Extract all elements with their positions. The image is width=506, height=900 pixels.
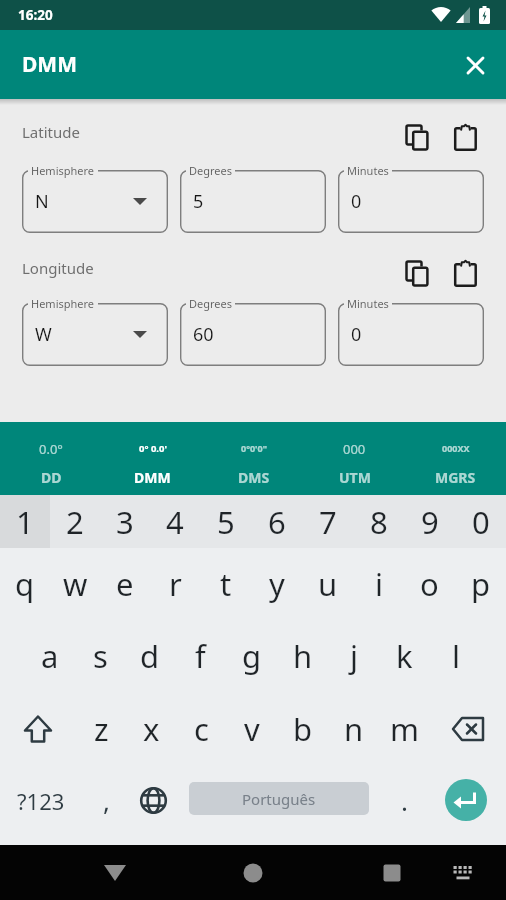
staticText: 60 xyxy=(193,322,214,347)
staticText: Minutes xyxy=(347,163,389,178)
staticText: a xyxy=(41,635,59,677)
button[interactable]: o xyxy=(404,548,455,620)
button[interactable]: Degrees xyxy=(180,163,326,233)
button[interactable]: 000XX xyxy=(405,422,506,495)
staticText: g xyxy=(242,635,262,677)
button[interactable] xyxy=(130,761,176,840)
button[interactable] xyxy=(448,256,482,290)
staticText: DMM xyxy=(134,468,171,487)
button[interactable]: p xyxy=(455,548,506,620)
button[interactable] xyxy=(362,845,422,900)
button[interactable]: Minutes xyxy=(338,163,484,233)
staticText: 16:20 xyxy=(18,6,53,24)
staticText: e xyxy=(116,563,134,605)
button[interactable]: t xyxy=(200,548,251,620)
staticText: Hemisphere xyxy=(31,163,95,178)
button[interactable]: s xyxy=(75,620,125,692)
staticText: Português xyxy=(242,789,316,809)
button[interactable]: b xyxy=(277,692,328,766)
button[interactable]: Minutes xyxy=(338,296,484,366)
staticText: b xyxy=(293,708,313,750)
button[interactable]: ?123 xyxy=(0,761,82,840)
staticText: 000XX xyxy=(442,442,470,454)
button[interactable]: Hemisphere xyxy=(22,296,168,366)
button[interactable]: 0.0° xyxy=(0,422,102,495)
staticText: 8 xyxy=(370,501,388,543)
staticText: Degrees xyxy=(189,296,232,311)
staticText: UTM xyxy=(339,468,371,487)
staticText: DMM xyxy=(22,50,77,79)
button[interactable]: 2 xyxy=(50,495,100,548)
button[interactable]: g xyxy=(226,620,277,692)
button[interactable]: 8 xyxy=(353,495,404,548)
button[interactable]: u xyxy=(302,548,353,620)
button[interactable]: l xyxy=(430,620,481,692)
button[interactable]: 6 xyxy=(251,495,302,548)
staticText: 0°0'0" xyxy=(241,442,267,454)
button[interactable]: 3 xyxy=(100,495,150,548)
button[interactable]: e xyxy=(100,548,150,620)
staticText: w xyxy=(63,563,88,605)
staticText: , xyxy=(103,783,110,818)
button[interactable]: a xyxy=(25,620,75,692)
button[interactable] xyxy=(445,779,487,821)
button[interactable]: w xyxy=(50,548,100,620)
staticText: u xyxy=(318,563,338,605)
button[interactable]: Degrees xyxy=(180,296,326,366)
staticText: . xyxy=(401,783,408,818)
button[interactable]: Português xyxy=(189,782,369,815)
staticText: 0 xyxy=(472,501,490,543)
button[interactable]: 0 xyxy=(455,495,506,548)
button[interactable]: v xyxy=(226,692,277,766)
button[interactable]: f xyxy=(175,620,226,692)
button[interactable]: n xyxy=(328,692,379,766)
staticText: t xyxy=(220,563,232,605)
button[interactable]: 000 xyxy=(304,422,405,495)
staticText: Longitude xyxy=(22,258,94,278)
staticText: c xyxy=(194,708,209,750)
button[interactable] xyxy=(438,845,488,900)
staticText: h xyxy=(293,635,313,677)
button[interactable] xyxy=(448,120,482,154)
staticText: i xyxy=(375,563,383,605)
staticText: 5 xyxy=(217,501,235,543)
staticText: 2 xyxy=(66,501,84,543)
button[interactable]: y xyxy=(251,548,302,620)
staticText: DD xyxy=(41,468,62,487)
button[interactable] xyxy=(400,120,434,154)
button[interactable] xyxy=(85,845,145,900)
staticText: q xyxy=(15,563,35,605)
button[interactable]: 4 xyxy=(150,495,200,548)
button[interactable]: . xyxy=(376,761,432,840)
button[interactable]: j xyxy=(328,620,379,692)
button[interactable]: Hemisphere xyxy=(22,163,168,233)
button[interactable]: k xyxy=(379,620,430,692)
button[interactable]: z xyxy=(76,692,126,766)
button[interactable]: 7 xyxy=(302,495,353,548)
button[interactable] xyxy=(0,692,76,766)
button[interactable]: 0°0'0" xyxy=(203,422,304,495)
button[interactable]: d xyxy=(125,620,175,692)
button[interactable] xyxy=(400,256,434,290)
staticText: v xyxy=(244,708,260,750)
staticText: ?123 xyxy=(17,786,65,816)
staticText: DMS xyxy=(238,468,270,487)
button[interactable]: x xyxy=(126,692,176,766)
staticText: o xyxy=(420,563,439,605)
button[interactable] xyxy=(453,43,497,87)
button[interactable]: 1 xyxy=(0,495,50,548)
button[interactable]: 0° 0.0' xyxy=(102,422,203,495)
button[interactable]: h xyxy=(277,620,328,692)
button[interactable]: 5 xyxy=(200,495,251,548)
button[interactable]: r xyxy=(150,548,200,620)
staticText: 0.0° xyxy=(39,440,63,456)
button[interactable]: , xyxy=(82,761,130,840)
button[interactable] xyxy=(223,845,283,900)
button[interactable]: 9 xyxy=(404,495,455,548)
button[interactable]: i xyxy=(353,548,404,620)
button[interactable]: q xyxy=(0,548,50,620)
staticText: f xyxy=(195,635,206,677)
button[interactable] xyxy=(430,692,506,766)
button[interactable]: m xyxy=(379,692,430,766)
button[interactable]: c xyxy=(176,692,226,766)
